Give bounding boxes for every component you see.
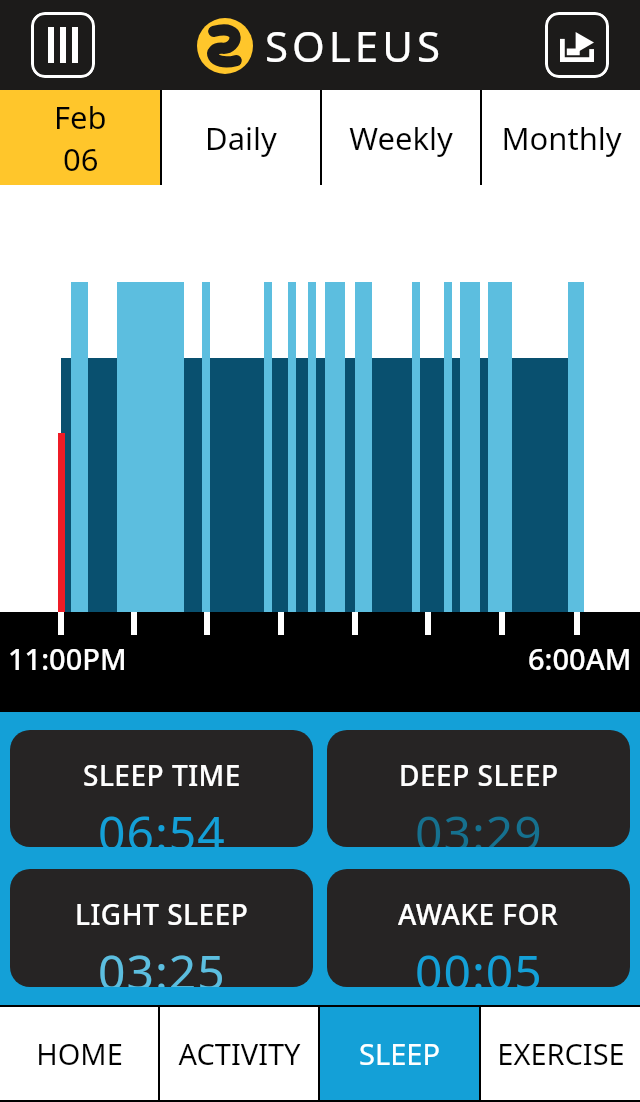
button[interactable]: Share: [545, 12, 609, 78]
button[interactable]: Feb: [0, 90, 160, 185]
button[interactable]: SLEEP: [320, 1005, 479, 1102]
button[interactable]: Daily: [162, 90, 320, 185]
staticText: DEEP SLEEP: [399, 756, 559, 794]
button[interactable]: ACTIVITY: [160, 1005, 318, 1102]
button[interactable]: DEEP SLEEP: [327, 730, 630, 847]
button[interactable]: EXERCISE: [481, 1005, 640, 1102]
staticText: 03:25: [98, 939, 226, 987]
staticText: 6:00AM: [528, 639, 632, 678]
staticText: LIGHT SLEEP: [75, 895, 249, 933]
staticText: 11:00PM: [8, 639, 127, 678]
staticText: ACTIVITY: [178, 1034, 301, 1073]
staticText: Feb: [54, 96, 107, 138]
button[interactable]: LIGHT SLEEP: [10, 869, 313, 987]
staticText: Weekly: [349, 117, 453, 159]
staticText: Daily: [205, 117, 277, 159]
staticText: 06:54: [98, 800, 226, 847]
button[interactable]: SLEEP TIME: [10, 730, 313, 847]
staticText: 03:29: [415, 800, 543, 847]
staticText: SOLEUS: [265, 17, 444, 74]
button[interactable]: Monthly: [482, 90, 640, 185]
staticText: AWAKE FOR: [398, 895, 559, 933]
staticText: SLEEP TIME: [83, 756, 241, 794]
button[interactable]: HOME: [0, 1005, 158, 1102]
staticText: Monthly: [501, 117, 622, 159]
button[interactable]: Menu: [31, 12, 95, 78]
button[interactable]: AWAKE FOR: [327, 869, 630, 987]
button[interactable]: Weekly: [322, 90, 480, 185]
staticText: SLEEP: [359, 1034, 440, 1073]
staticText: HOME: [36, 1034, 123, 1073]
staticText: 00:05: [415, 939, 543, 987]
staticText: EXERCISE: [497, 1034, 625, 1073]
staticText: 06: [63, 138, 99, 180]
